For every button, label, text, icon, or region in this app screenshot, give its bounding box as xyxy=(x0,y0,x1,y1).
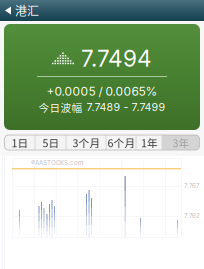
button[interactable]: 港汇 xyxy=(0,2,39,19)
staticText: 1日 xyxy=(11,135,28,150)
staticText: 港汇 xyxy=(15,2,39,19)
staticText: 6个月 xyxy=(107,135,135,150)
button[interactable]: 6个月 xyxy=(106,135,136,150)
staticText: +0.0005 / 0.0065% xyxy=(46,84,157,98)
button[interactable]: 3个月 xyxy=(66,135,106,150)
staticText: 7.7494 xyxy=(81,45,152,72)
staticText: 5日 xyxy=(42,135,59,150)
button[interactable]: 1年 xyxy=(136,135,162,150)
staticText: 1年 xyxy=(141,135,158,150)
button[interactable]: 3年 xyxy=(162,135,199,150)
staticText: 3个月 xyxy=(72,135,100,150)
staticText: 今日波幅 xyxy=(38,99,82,115)
staticText: 3年 xyxy=(172,135,189,150)
staticText: 7.7489 - 7.7499 xyxy=(86,101,165,114)
button[interactable]: 5日 xyxy=(35,135,66,150)
button[interactable]: 1日 xyxy=(4,135,35,150)
staticText: 7.762 xyxy=(184,212,200,219)
staticText: 7.767 xyxy=(184,182,199,189)
staticText: ®AASTOCKS.com xyxy=(31,159,83,166)
